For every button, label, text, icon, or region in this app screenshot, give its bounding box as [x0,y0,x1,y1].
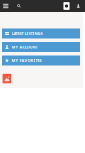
staticText: MY FAVORITES [12,58,42,63]
staticText: LATEST LISTINGS [12,31,43,36]
button[interactable]: Home [62,0,70,12]
button[interactable]: MY ACCOUNT [2,42,80,52]
button[interactable]: Menu [0,0,11,12]
button[interactable]: MY FAVORITES [2,55,80,65]
button[interactable]: LATEST LISTINGS [2,28,80,38]
button[interactable]: Search [14,0,23,12]
button[interactable]: Image [3,74,11,83]
staticText: MY ACCOUNT [12,44,38,50]
button[interactable]: Account [74,0,82,12]
